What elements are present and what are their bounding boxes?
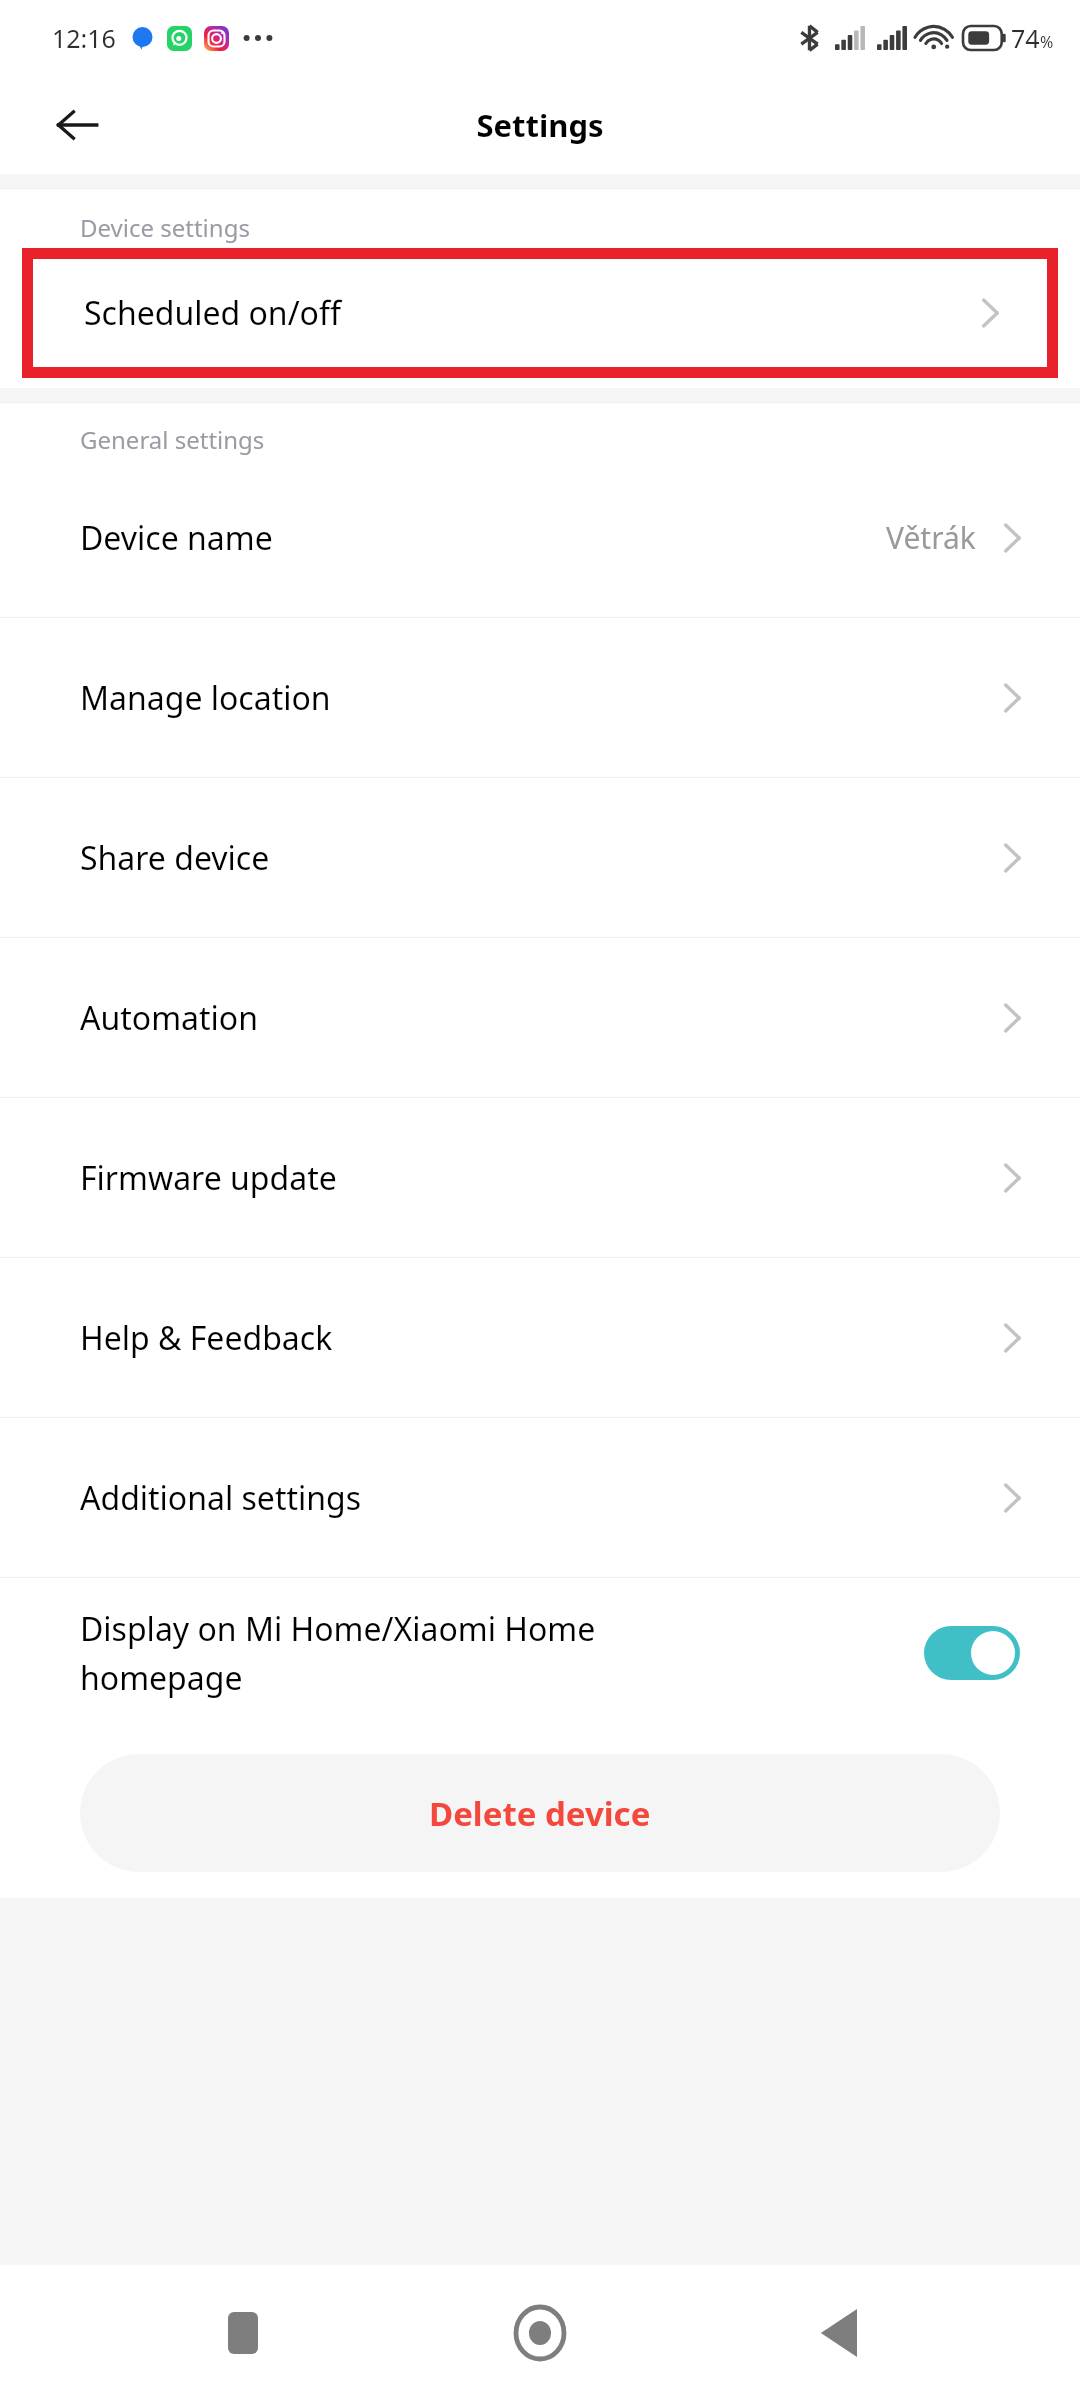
button[interactable]: Recents [188, 2278, 298, 2388]
staticText: Firmware update [80, 1156, 1002, 1200]
staticText: Delete device [429, 1791, 651, 1836]
staticText: Help & Feedback [80, 1316, 1002, 1360]
staticText: Manage location [80, 676, 1002, 720]
button[interactable]: Device name [0, 458, 1080, 617]
staticText: Automation [80, 996, 1002, 1040]
staticText: Scheduled on/off [84, 291, 980, 335]
button[interactable]: Display on Mi Home/Xiaomi Home homepage [0, 1578, 1080, 1728]
staticText: Share device [80, 836, 1002, 880]
button[interactable]: Manage location [0, 618, 1080, 777]
staticText: Settings [476, 104, 604, 146]
staticText: Device settings [80, 211, 250, 244]
staticText: Device name [80, 516, 886, 560]
button[interactable]: Help & Feedback [0, 1258, 1080, 1417]
button[interactable]: Back [46, 94, 108, 156]
staticText: Additional settings [80, 1476, 1002, 1520]
button[interactable]: Display on homepage toggle [924, 1626, 1020, 1680]
button[interactable]: Home [485, 2278, 595, 2388]
button[interactable]: Share device [0, 778, 1080, 937]
button[interactable]: Scheduled on/off [30, 248, 1050, 378]
button[interactable]: Back [783, 2278, 893, 2388]
button[interactable]: Delete device [80, 1754, 1000, 1872]
staticText: General settings [80, 423, 265, 456]
staticText: 12:16 [52, 21, 116, 55]
staticText: Větrák [886, 517, 976, 558]
staticText: % [1040, 31, 1054, 53]
button[interactable]: Additional settings [0, 1418, 1080, 1577]
staticText: 74 [1011, 21, 1040, 55]
button[interactable]: Firmware update [0, 1098, 1080, 1257]
button[interactable]: Automation [0, 938, 1080, 1097]
staticText: Display on Mi Home/Xiaomi Home homepage [80, 1607, 904, 1699]
